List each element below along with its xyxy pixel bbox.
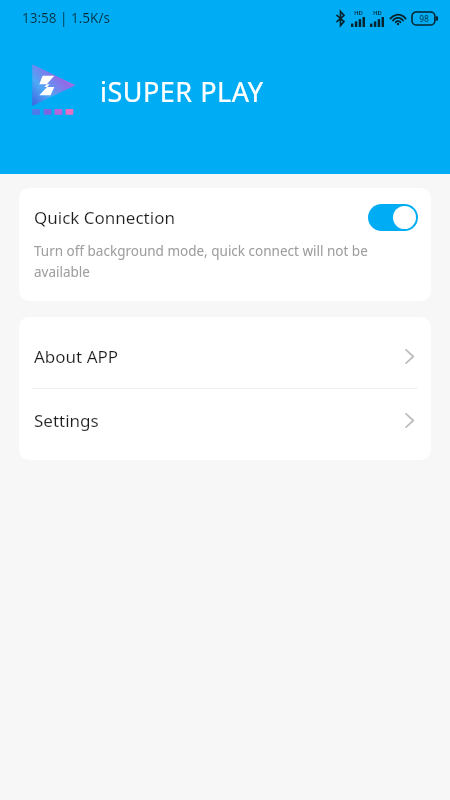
staticText: 13:58 | 1.5K/s — [22, 9, 110, 27]
staticText: Settings — [34, 409, 405, 432]
staticText: iSUPER PLAY — [100, 73, 264, 110]
button[interactable]: About APP — [19, 325, 431, 388]
staticText: Turn off background mode, quick connect … — [34, 242, 368, 281]
staticText: Quick Connection — [34, 206, 368, 229]
staticText: HD — [373, 9, 382, 17]
button[interactable]: Quick Connection — [19, 188, 431, 233]
button[interactable]: Settings — [19, 389, 431, 452]
staticText: HD — [354, 9, 363, 17]
button[interactable]: Quick Connection toggle, on — [368, 204, 418, 231]
staticText: 98 — [419, 13, 429, 25]
staticText: About APP — [34, 345, 405, 368]
